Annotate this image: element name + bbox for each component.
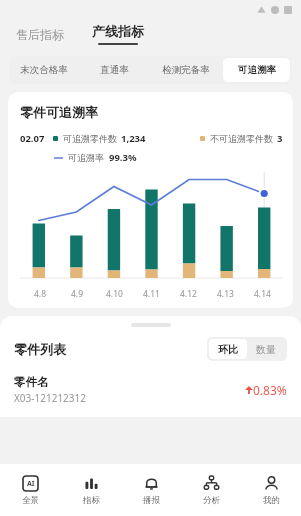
button[interactable]: 可追溯率 [223, 58, 290, 82]
button[interactable]: 产线指标 [90, 23, 146, 45]
staticText: 分析 [203, 495, 220, 506]
button[interactable]: 全景 [0, 464, 61, 516]
staticText: 1,234 [121, 132, 146, 145]
staticText: 4.12 [180, 288, 197, 300]
staticText: 4.14 [254, 288, 271, 300]
staticText: 零件名 [14, 375, 49, 389]
staticText: 检测完备率 [162, 64, 210, 76]
button[interactable]: 环比 [209, 339, 247, 359]
button[interactable]: 零件名 [14, 375, 287, 405]
staticText: 4.10 [106, 288, 123, 300]
staticText: 售后指标 [16, 27, 64, 42]
staticText: 可追溯率 [68, 152, 104, 163]
staticText: 末次合格率 [20, 64, 68, 76]
button[interactable]: 检测完备率 [152, 58, 219, 82]
staticText: 4.8 [34, 288, 47, 300]
staticText: 可追溯率 [238, 64, 276, 76]
button[interactable]: 直通率 [81, 58, 148, 82]
staticText: 零件列表 [14, 341, 66, 357]
staticText: 4.13 [217, 288, 234, 300]
button[interactable]: 指标 [61, 464, 121, 516]
button[interactable]: 售后指标 [14, 23, 66, 46]
button[interactable]: 分析 [181, 464, 241, 516]
staticText: 播报 [143, 495, 160, 506]
staticText: 不可追溯零件数 [210, 133, 273, 144]
staticText: 99.3% [109, 151, 137, 164]
staticText: X03-121212312 [14, 391, 87, 405]
other: 分析 [203, 475, 220, 492]
button[interactable]: 播报 [121, 464, 181, 516]
other: 播报 [143, 475, 160, 492]
staticText: 直通率 [100, 64, 129, 76]
other: 全景 [22, 475, 39, 492]
staticText: 数量 [256, 343, 276, 356]
other: 我的 [263, 475, 280, 492]
other: 指标 [83, 475, 100, 492]
staticText: 零件可追溯率 [20, 104, 98, 120]
button[interactable]: 末次合格率 [11, 58, 77, 82]
staticText: 0.83% [253, 382, 287, 398]
button[interactable]: 我的 [241, 464, 301, 516]
staticText: 4.9 [71, 288, 84, 300]
staticText: AI [27, 479, 35, 489]
button[interactable]: 数量 [247, 339, 285, 359]
staticText: 产线指标 [92, 23, 144, 39]
staticText: 全景 [22, 495, 39, 506]
staticText: 3 [277, 132, 283, 145]
staticText: 可追溯零件数 [63, 133, 117, 144]
staticText: 02.07 [20, 132, 45, 145]
staticText: 4.11 [143, 288, 160, 300]
staticText: 我的 [263, 495, 280, 506]
staticText: 环比 [218, 343, 238, 356]
staticText: 指标 [83, 495, 100, 506]
